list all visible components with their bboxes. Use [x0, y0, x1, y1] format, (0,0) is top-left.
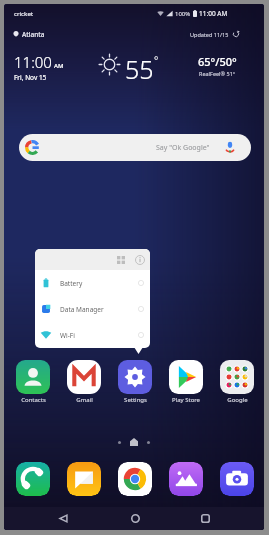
staticText: 11:00 [14, 52, 52, 72]
staticText: 65°/50° [198, 54, 237, 69]
staticText: Fri, Nov 15 [14, 73, 47, 82]
staticText: 11:00 AM [199, 9, 228, 18]
staticText: AM [54, 62, 64, 70]
button[interactable]: Photos [169, 462, 203, 496]
button[interactable]: Chrome [118, 462, 152, 496]
button[interactable]: Battery [35, 270, 150, 296]
button[interactable]: Google [216, 360, 258, 404]
button[interactable]: Settings [114, 360, 156, 404]
button[interactable]: Back [52, 507, 75, 530]
staticText: Contacts [21, 396, 46, 404]
button[interactable]: Wi-Fi [35, 322, 150, 348]
button[interactable]: Phone [16, 462, 50, 496]
button[interactable]: Gmail [63, 360, 105, 404]
button[interactable]: Play Store [165, 360, 207, 404]
staticText: Say "Ok Google" [156, 143, 210, 153]
staticText: 55 [125, 52, 154, 86]
staticText: Settings [124, 396, 147, 404]
button[interactable]: Widgets [113, 252, 128, 267]
staticText: Google [227, 396, 248, 404]
button[interactable]: Recent apps [194, 507, 217, 530]
button[interactable]: Search [19, 134, 251, 161]
staticText: Gmail [76, 396, 93, 404]
button[interactable]: Contacts [12, 360, 54, 404]
staticText: RealFeel® 51° [199, 70, 236, 77]
button[interactable]: Home [124, 507, 147, 530]
staticText: 100% [175, 10, 191, 18]
button[interactable]: Data Manager [35, 296, 150, 322]
staticText: cricket [14, 10, 34, 18]
staticText: Play Store [172, 396, 200, 404]
staticText: Data Manager [60, 305, 104, 314]
staticText: ° [154, 53, 159, 67]
staticText: Updated 11/15 [190, 31, 229, 38]
button[interactable]: App info [132, 252, 147, 267]
staticText: Battery [60, 279, 83, 288]
staticText: Wi-Fi [60, 331, 75, 340]
button[interactable]: Messages [67, 462, 101, 496]
staticText: Atlanta [22, 30, 45, 39]
button[interactable]: Camera [220, 462, 254, 496]
